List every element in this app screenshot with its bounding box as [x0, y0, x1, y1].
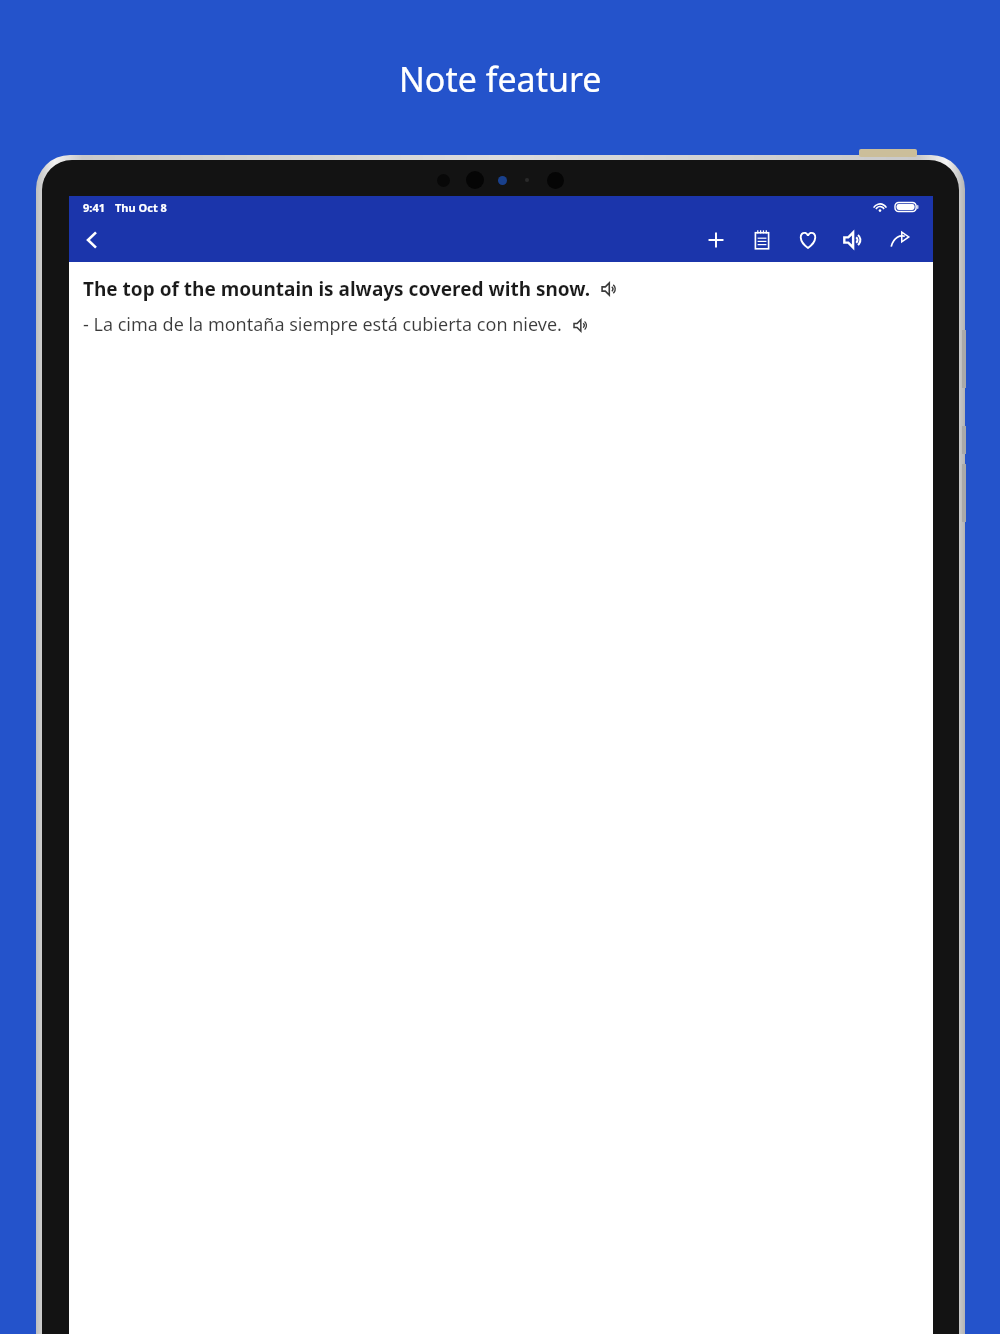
button[interactable]: Play English sentence	[599, 278, 621, 300]
staticText: Thu Oct 8	[115, 200, 167, 215]
button[interactable]: Add note	[693, 218, 739, 262]
button[interactable]: Favorite	[785, 218, 831, 262]
staticText: Note feature	[399, 56, 602, 102]
staticText: The top of the mountain is always covere…	[83, 276, 591, 302]
staticText: 9:41	[83, 200, 105, 215]
button[interactable]: Share	[877, 218, 923, 262]
staticText: - La cima de la montaña siempre está cub…	[83, 312, 562, 337]
button[interactable]: Play Spanish sentence	[570, 314, 592, 336]
button[interactable]: Play audio	[831, 218, 877, 262]
button[interactable]: Back	[69, 218, 115, 262]
button[interactable]: Notepad	[739, 218, 785, 262]
